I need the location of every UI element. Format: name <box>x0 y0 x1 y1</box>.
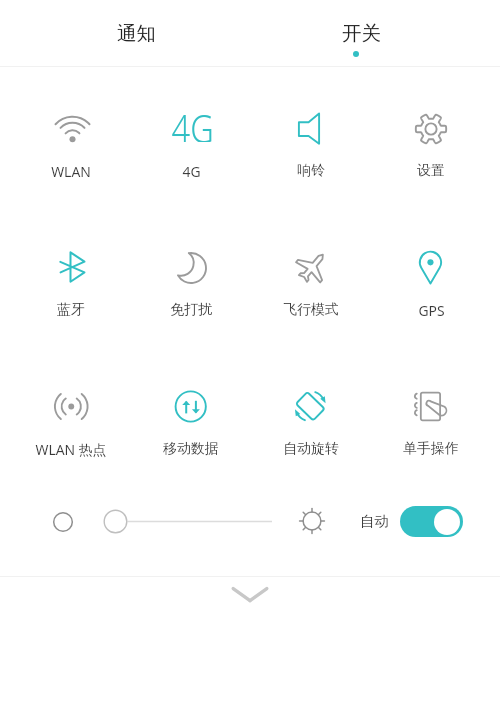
button[interactable]: WLAN 热点 <box>11 389 131 459</box>
button[interactable]: Lower brightness <box>45 504 81 540</box>
staticText: WLAN <box>51 162 91 181</box>
button[interactable]: 自动旋转 <box>251 389 371 458</box>
staticText: 通知 <box>117 21 156 46</box>
staticText: 蓝牙 <box>57 301 85 319</box>
button[interactable]: 移动数据 <box>131 389 251 458</box>
staticText: 自动 <box>360 512 389 530</box>
button[interactable]: 自动 <box>360 503 463 539</box>
button[interactable]: 通知 <box>99 10 173 56</box>
button[interactable]: 响铃 <box>251 111 371 180</box>
staticText: 4G <box>182 162 201 181</box>
button[interactable]: 设置 <box>371 111 491 180</box>
staticText: 飞行模式 <box>283 301 339 319</box>
button[interactable]: Collapse panel <box>226 580 274 608</box>
button[interactable]: Raise brightness <box>294 503 330 539</box>
button[interactable]: 4G <box>131 111 251 181</box>
staticText: 移动数据 <box>163 440 219 458</box>
button[interactable]: 免打扰 <box>131 250 251 319</box>
staticText: 免打扰 <box>170 301 212 319</box>
staticText: GPS <box>418 301 445 320</box>
staticText: 自动旋转 <box>283 440 339 458</box>
staticText: 响铃 <box>297 162 325 180</box>
button[interactable]: 单手操作 <box>371 389 491 458</box>
staticText: 4G <box>172 103 214 142</box>
button[interactable]: GPS <box>371 250 491 320</box>
button[interactable]: 飞行模式 <box>251 250 371 319</box>
staticText: WLAN 热点 <box>35 440 107 459</box>
button[interactable]: 蓝牙 <box>11 250 131 319</box>
staticText: 开关 <box>342 21 381 46</box>
staticText: 单手操作 <box>403 440 459 458</box>
button[interactable]: WLAN <box>11 111 131 181</box>
button[interactable]: 开关 <box>324 10 398 56</box>
button[interactable]: Brightness slider <box>98 503 288 539</box>
staticText: 设置 <box>417 162 445 180</box>
